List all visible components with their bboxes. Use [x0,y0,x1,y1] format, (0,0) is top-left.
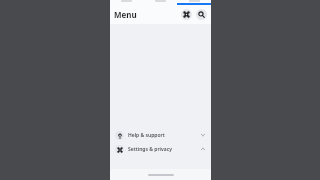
button[interactable]: Tab [143,0,177,5]
staticText: Help & support [128,132,165,139]
button[interactable]: Help & support [110,128,211,142]
button[interactable]: Search [196,9,207,20]
button[interactable]: Selected tab [177,0,211,5]
button[interactable]: Tab [110,0,143,5]
staticText: Settings & privacy [128,146,172,153]
staticText: Menu [114,9,137,20]
button[interactable]: Settings & privacy [110,142,211,156]
button[interactable]: Settings [181,9,192,20]
